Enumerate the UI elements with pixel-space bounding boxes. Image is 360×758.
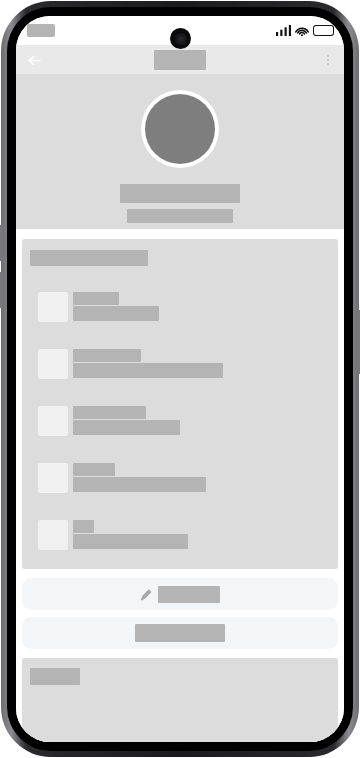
- button[interactable]: More options: [315, 47, 341, 73]
- button[interactable]: Back: [21, 47, 47, 73]
- button[interactable]: [30, 451, 330, 504]
- button[interactable]: [22, 617, 338, 649]
- button[interactable]: [30, 394, 330, 447]
- button[interactable]: Profile photo: [145, 94, 215, 164]
- button[interactable]: [30, 337, 330, 390]
- button[interactable]: [22, 578, 338, 610]
- button[interactable]: [30, 280, 330, 333]
- button[interactable]: [30, 508, 330, 561]
